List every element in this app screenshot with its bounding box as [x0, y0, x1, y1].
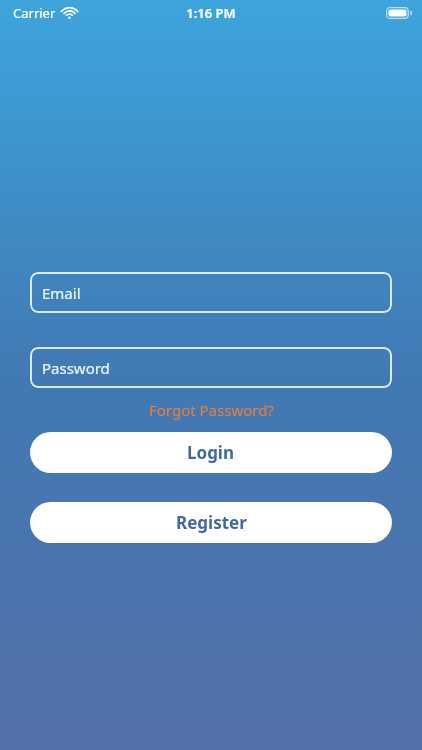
staticText: Forgot Password? [149, 400, 274, 420]
button[interactable]: Login [30, 432, 392, 473]
button[interactable]: Email [30, 272, 392, 313]
staticText: 1:16 PM [186, 4, 236, 22]
staticText: Email [42, 283, 81, 303]
staticText: Login [187, 441, 235, 464]
button[interactable]: Forgot Password? [141, 398, 282, 422]
button[interactable]: Register [30, 502, 392, 543]
staticText: Register [176, 511, 247, 534]
staticText: Password [42, 358, 110, 378]
button[interactable]: Password [30, 347, 392, 388]
staticText: Carrier [13, 4, 56, 22]
